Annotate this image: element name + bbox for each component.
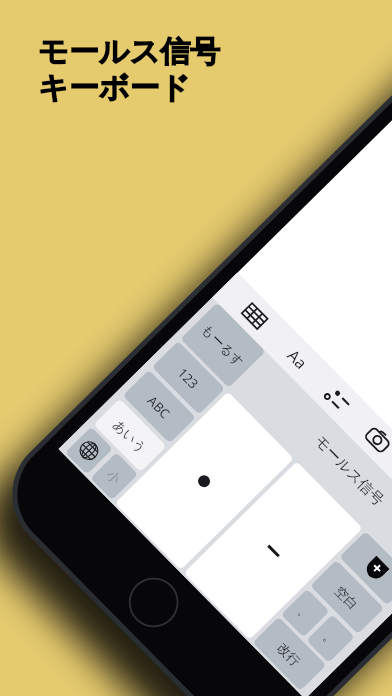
- button[interactable]: 123: [152, 341, 225, 415]
- button[interactable]: Grid: [237, 298, 272, 333]
- staticText: 。: [320, 629, 341, 650]
- button[interactable]: [184, 461, 363, 640]
- button[interactable]: 、: [281, 589, 330, 637]
- button[interactable]: 改行: [252, 617, 326, 691]
- staticText: モールス信号: [310, 432, 388, 511]
- button[interactable]: Camera: [360, 422, 392, 458]
- staticText: 改行: [274, 639, 304, 669]
- button[interactable]: 空白: [310, 560, 384, 634]
- button[interactable]: Morse: [319, 382, 356, 418]
- button[interactable]: ABC: [123, 370, 196, 443]
- button[interactable]: 。: [306, 614, 355, 663]
- staticText: あいう: [110, 416, 150, 456]
- button[interactable]: あいう: [93, 398, 167, 472]
- button[interactable]: [339, 531, 392, 605]
- staticText: 空白: [332, 582, 361, 612]
- staticText: もーるす: [199, 321, 247, 370]
- staticText: モールス信号 キーボード: [38, 33, 221, 107]
- button[interactable]: [65, 427, 113, 475]
- button[interactable]: Aa: [279, 340, 317, 378]
- button[interactable]: Home: [118, 567, 189, 638]
- button[interactable]: もーるす: [180, 302, 266, 388]
- staticText: Aa: [283, 345, 312, 374]
- button[interactable]: [115, 391, 294, 570]
- staticText: 123: [174, 364, 203, 393]
- staticText: ABC: [144, 392, 174, 422]
- staticText: 、: [295, 603, 315, 624]
- button[interactable]: 小: [90, 452, 138, 500]
- staticText: 小: [104, 466, 124, 487]
